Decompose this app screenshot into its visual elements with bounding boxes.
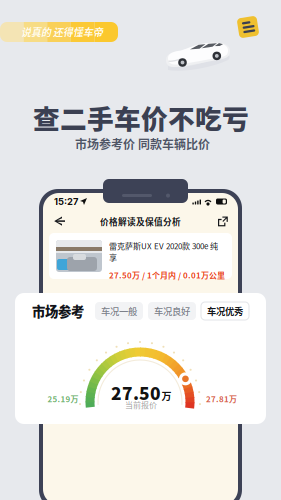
button[interactable]: 雷克萨斯UX EV 2020款 300e 纯享 <box>49 233 232 279</box>
button[interactable]: Share <box>214 212 232 230</box>
staticText: 27.50 <box>111 380 161 405</box>
staticText: 雷克萨斯UX EV 2020款 300e 纯享 <box>109 240 218 263</box>
staticText: 27.81万 <box>206 393 237 405</box>
staticText: 市场参考价 同款车辆比价 <box>75 135 210 152</box>
staticText: 27.50万 / 1个月内 / 0.01万公里 <box>109 269 225 281</box>
staticText: 万 <box>161 388 171 403</box>
staticText: 说真的 还得懂车帝 <box>21 25 103 39</box>
staticText: 价格解读及保值分析 <box>100 215 181 228</box>
staticText: 车况良好 <box>154 304 190 318</box>
staticText: 25.19万 <box>47 393 78 405</box>
staticText: 车况一般 <box>101 304 137 318</box>
staticText: 查二手车价不吃亏 <box>33 98 249 137</box>
staticText: 市场参考 <box>32 301 84 321</box>
button[interactable]: 车况良好 <box>148 302 196 320</box>
button[interactable]: 车况一般 <box>95 302 143 320</box>
staticText: 当前报价 <box>125 399 157 411</box>
button[interactable]: 车况优秀 <box>201 302 249 320</box>
staticText: 15:27 <box>54 196 78 207</box>
button[interactable]: Back <box>49 212 70 230</box>
staticText: 车况优秀 <box>207 304 243 318</box>
